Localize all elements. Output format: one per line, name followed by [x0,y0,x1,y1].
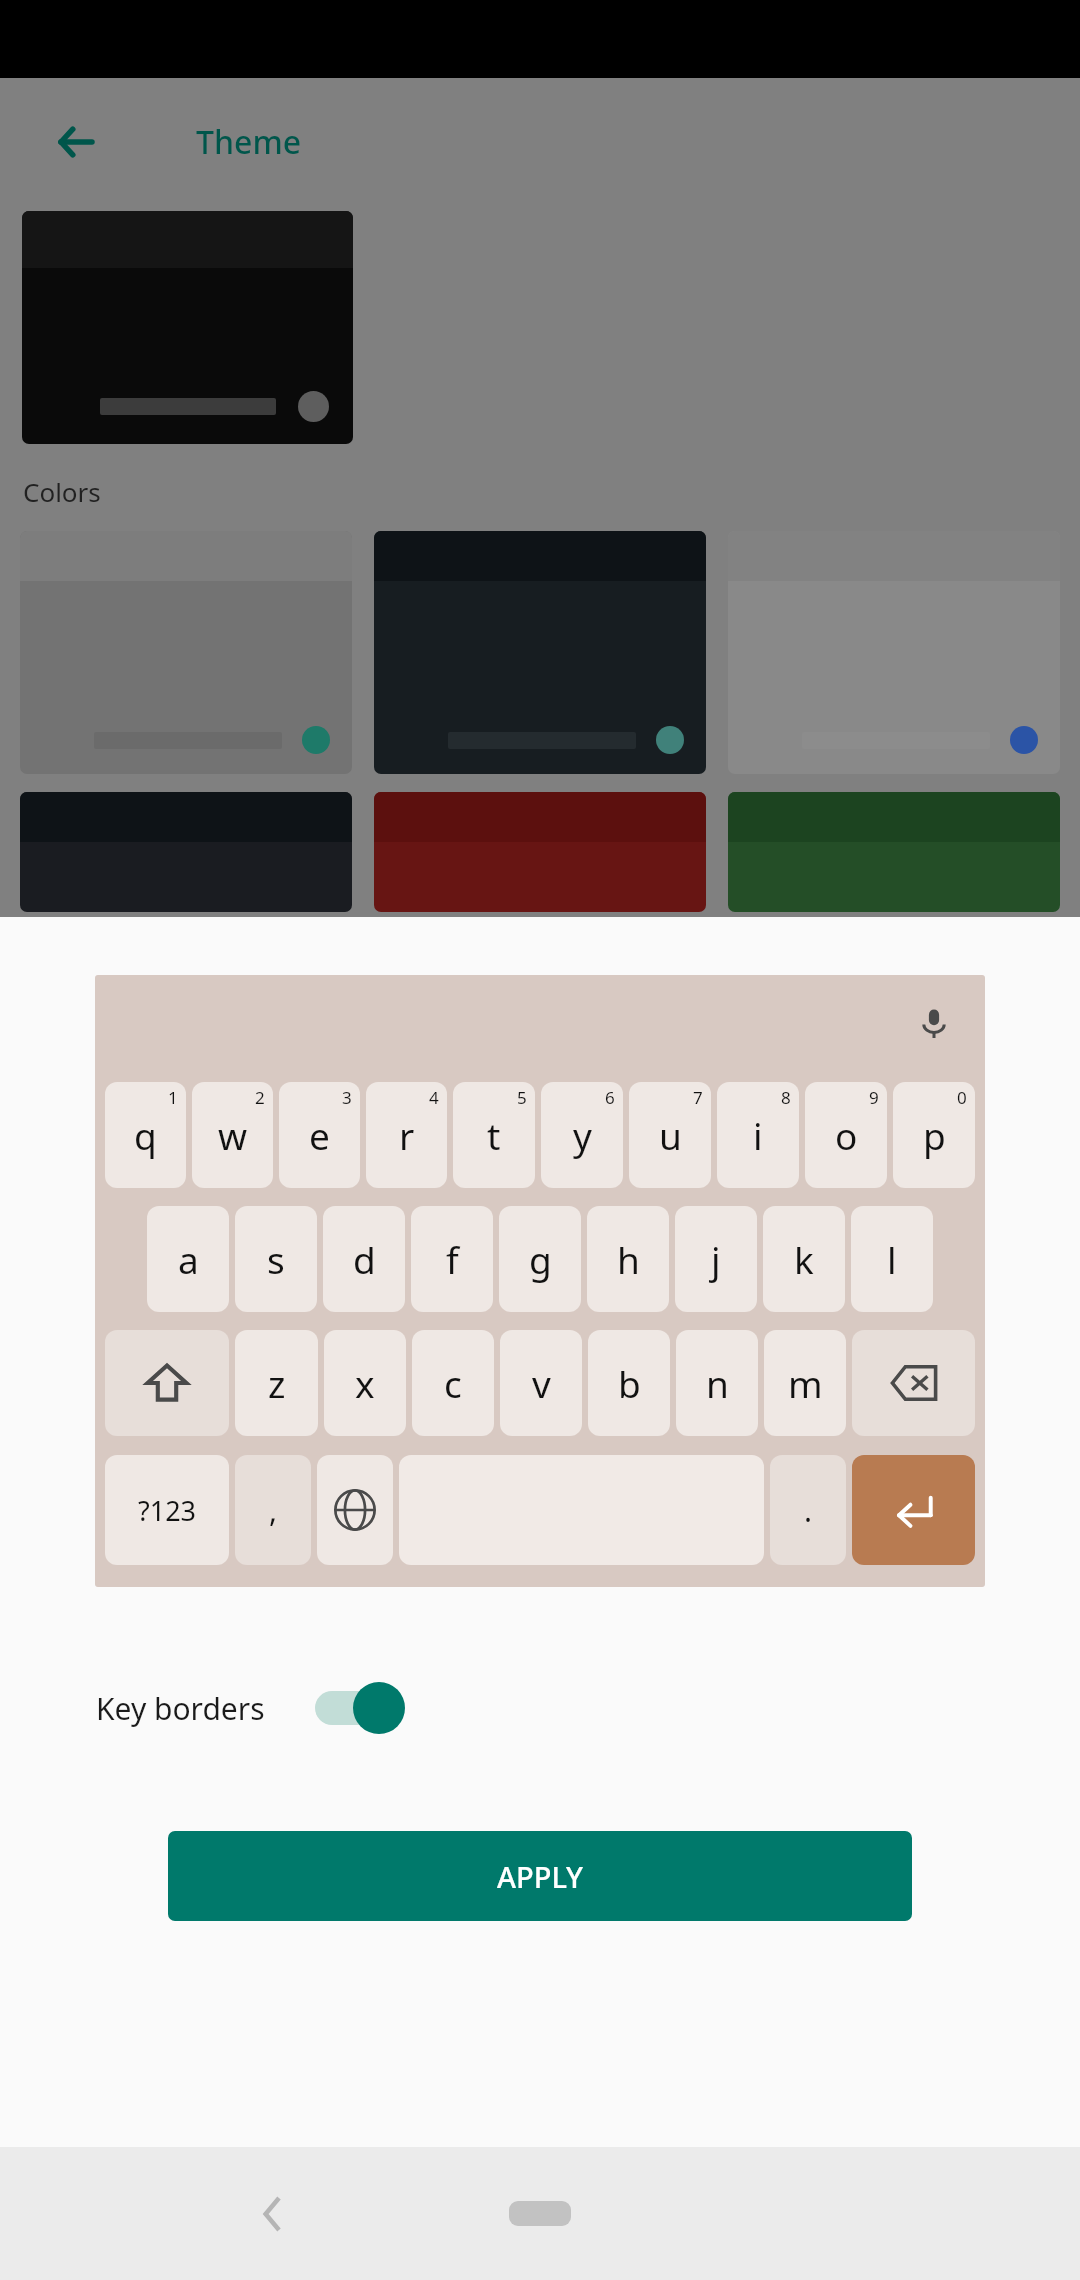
button[interactable] [20,531,352,774]
staticText: 7 [693,1086,703,1109]
button[interactable]: 3 [279,1082,360,1188]
button[interactable]: 6 [541,1082,623,1188]
staticText: . [804,1490,813,1531]
staticText: e [309,1110,330,1160]
staticText: 0 [957,1086,967,1109]
staticText: w [218,1110,248,1160]
button[interactable]: APPLY [168,1831,912,1921]
button[interactable]: c [412,1330,494,1436]
button[interactable]: , [235,1455,311,1565]
staticText: n [706,1358,729,1408]
button[interactable]: 2 [192,1082,273,1188]
button[interactable]: Change language [317,1455,393,1565]
staticText: APPLY [497,1857,583,1896]
button[interactable] [22,211,353,444]
staticText: 4 [429,1086,439,1109]
staticText: b [618,1358,641,1408]
button[interactable]: 4 [366,1082,447,1188]
button[interactable]: j [675,1206,757,1312]
button[interactable]: Backspace [852,1330,975,1436]
button[interactable]: Back [238,2180,306,2248]
staticText: ?123 [138,1492,197,1529]
button[interactable]: 0 [893,1082,975,1188]
staticText: 2 [255,1086,265,1109]
staticText: 5 [517,1086,527,1109]
button[interactable]: Voice input [905,995,963,1053]
button[interactable]: m [764,1330,846,1436]
staticText: m [788,1358,823,1408]
button[interactable] [20,792,352,912]
button[interactable]: ?123 [105,1455,229,1565]
staticText: 8 [781,1086,791,1109]
staticText: 3 [342,1086,352,1109]
button[interactable]: Key borders [0,1665,1080,1751]
button[interactable]: b [588,1330,670,1436]
staticText: r [399,1110,415,1160]
staticText: h [617,1234,640,1284]
button[interactable]: d [323,1206,405,1312]
button[interactable]: 8 [717,1082,799,1188]
button[interactable]: v [500,1330,582,1436]
button[interactable]: 5 [453,1082,535,1188]
button[interactable]: f [411,1206,493,1312]
button[interactable] [374,531,706,774]
staticText: Theme [196,120,302,164]
staticText: a [178,1234,199,1284]
staticText: y [573,1110,592,1160]
staticText: 9 [869,1086,879,1109]
button[interactable]: Shift [105,1330,229,1436]
button[interactable]: Home [509,2201,571,2226]
staticText: v [532,1358,551,1408]
button[interactable]: 9 [805,1082,887,1188]
button[interactable]: z [235,1330,318,1436]
staticText: p [923,1110,946,1160]
button[interactable]: k [763,1206,845,1312]
staticText: z [268,1358,286,1408]
button[interactable]: n [676,1330,758,1436]
staticText: 6 [605,1086,615,1109]
staticText: s [267,1234,285,1284]
staticText: j [711,1234,721,1284]
staticText: o [835,1110,858,1160]
staticText: f [446,1234,459,1284]
button[interactable] [728,531,1060,774]
button[interactable]: Back [40,106,112,178]
button[interactable]: . [770,1455,846,1565]
button[interactable]: l [851,1206,933,1312]
button[interactable]: 1 [105,1082,186,1188]
button[interactable] [374,792,706,912]
staticText: 1 [168,1086,178,1109]
staticText: , [269,1490,278,1531]
staticText: Colors [23,474,101,509]
staticText: u [659,1110,682,1160]
button[interactable]: 7 [629,1082,711,1188]
staticText: x [355,1358,375,1408]
staticText: c [444,1358,462,1408]
staticText: q [134,1110,157,1160]
button[interactable]: Enter [852,1455,975,1565]
staticText: l [887,1234,897,1284]
staticText: d [353,1234,376,1284]
staticText: t [487,1110,501,1160]
staticText: g [529,1234,552,1284]
button[interactable]: x [324,1330,406,1436]
button[interactable]: s [235,1206,317,1312]
button[interactable] [728,792,1060,912]
staticText: k [794,1234,814,1284]
staticText: i [753,1110,763,1160]
staticText: Key borders [96,1688,265,1729]
button[interactable]: h [587,1206,669,1312]
button[interactable]: a [147,1206,229,1312]
button[interactable]: g [499,1206,581,1312]
